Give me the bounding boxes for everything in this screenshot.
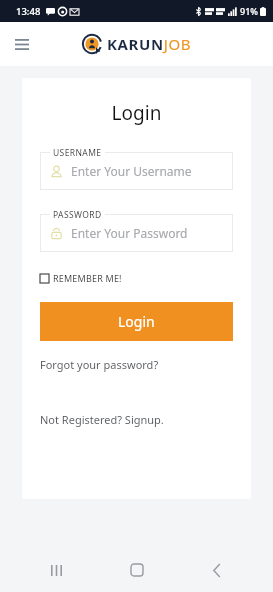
button[interactable]: Enter Your Username [40,152,233,190]
staticText: KARUNJOB [107,34,192,54]
staticText: Forgot your password? [40,357,159,372]
staticText: Enter Your Username [71,163,192,179]
staticText: USERNAME [53,147,102,159]
button[interactable]: Recent apps [32,548,80,592]
button[interactable]: Not Registered? Signup. [40,410,233,429]
staticText: Login [40,100,233,126]
button[interactable]: REMEMBER ME! [40,270,122,286]
staticText: REMEMBER ME! [53,272,122,284]
button[interactable]: Enter Your Password [40,214,233,252]
staticText: Login [118,312,155,331]
button[interactable]: Open navigation menu [6,28,38,60]
staticText: 13:48 [16,5,41,18]
staticText: PASSWORD [53,209,102,221]
button[interactable]: Back [193,548,241,592]
button[interactable]: Login [40,302,233,341]
staticText: 91% [240,5,258,17]
staticText: Enter Your Password [71,225,188,241]
button[interactable]: Forgot your password? [40,355,233,374]
button[interactable]: Home [113,548,161,592]
staticText: Not Registered? Signup. [40,412,164,427]
